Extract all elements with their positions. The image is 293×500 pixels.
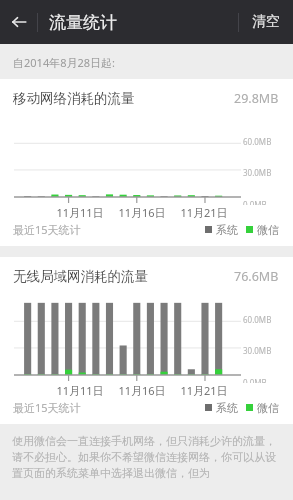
staticText: 30.0MB: [243, 345, 272, 356]
staticText: 76.6MB: [234, 268, 279, 285]
staticText: 系统: [216, 401, 238, 415]
button[interactable]: 清空: [239, 0, 293, 44]
staticText: 0.0MB: [243, 377, 267, 383]
staticText: 11月16日: [111, 383, 173, 398]
staticText: 11月16日: [111, 205, 173, 220]
staticText: 60.0MB: [243, 136, 272, 147]
staticText: 自2014年8月28日起:: [13, 55, 115, 70]
staticText: 11月11日: [49, 205, 111, 220]
staticText: 系统: [216, 223, 238, 237]
staticText: 11月11日: [49, 383, 111, 398]
staticText: 60.0MB: [243, 314, 272, 325]
staticText: 无线局域网消耗的流量: [13, 268, 148, 285]
staticText: 最近15天统计: [13, 222, 81, 237]
staticText: 最近15天统计: [13, 400, 81, 415]
button[interactable]: 移动网络消耗的流量: [0, 79, 293, 246]
staticText: 29.8MB: [234, 90, 279, 107]
staticText: 使用微信会一直连接手机网络，但只消耗少许的流量，请不必担心。如果你不希望微信连接…: [12, 434, 281, 480]
staticText: 微信: [257, 223, 279, 237]
staticText: 流量统计: [49, 12, 117, 33]
staticText: 11月21日: [173, 205, 235, 220]
staticText: 清空: [252, 13, 280, 31]
staticText: 微信: [257, 401, 279, 415]
staticText: 11月21日: [173, 383, 235, 398]
button[interactable]: Back: [0, 0, 37, 44]
staticText: 移动网络消耗的流量: [13, 90, 135, 107]
button[interactable]: 无线局域网消耗的流量: [0, 257, 293, 424]
staticText: 0.0MB: [243, 199, 267, 205]
staticText: 30.0MB: [243, 167, 272, 178]
